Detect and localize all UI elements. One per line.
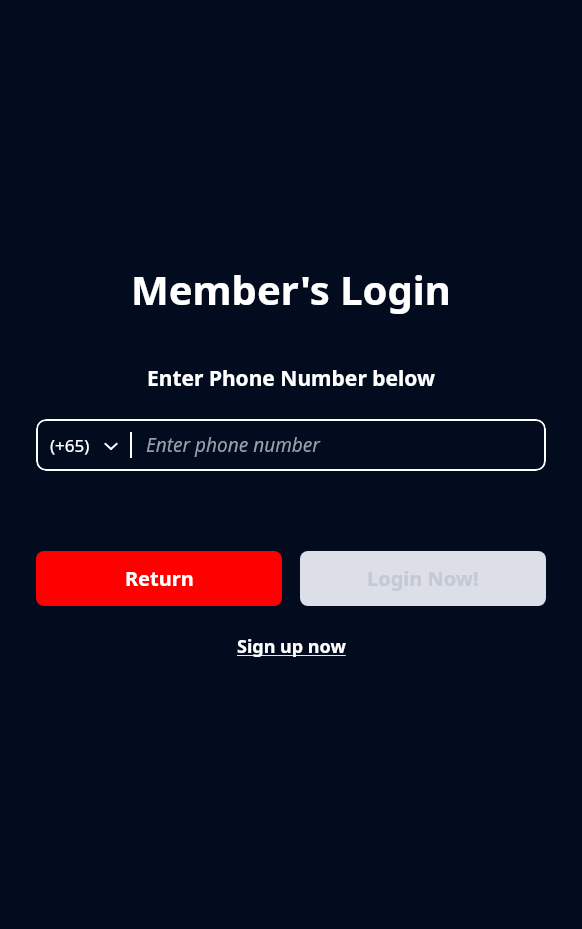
- staticText: Sign up now: [237, 634, 346, 659]
- staticText: (+65): [50, 434, 90, 457]
- staticText: Return: [125, 565, 194, 592]
- button[interactable]: Login Now!: [300, 551, 546, 606]
- button[interactable]: Return: [36, 551, 282, 606]
- staticText: Login Now!: [367, 565, 479, 592]
- button[interactable]: Sign up now: [231, 628, 352, 665]
- staticText: Enter Phone Number below: [147, 364, 435, 393]
- button[interactable]: (+65): [36, 434, 130, 457]
- staticText: Enter phone number: [146, 432, 320, 458]
- other: Select country code: [102, 437, 120, 455]
- button[interactable]: Enter phone number: [132, 419, 546, 471]
- staticText: Member's Login: [131, 262, 451, 316]
